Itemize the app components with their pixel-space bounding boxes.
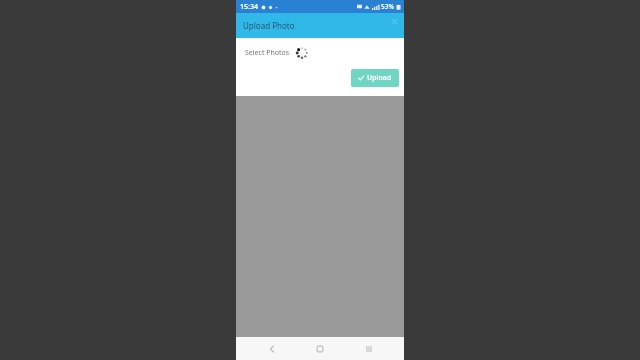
button[interactable]: Recents bbox=[356, 337, 382, 360]
staticText: Select Photos bbox=[245, 48, 290, 58]
button[interactable]: Back bbox=[259, 337, 285, 360]
button[interactable]: Upload bbox=[351, 69, 399, 87]
staticText: 53% bbox=[381, 2, 394, 11]
button[interactable]: Select Photos bbox=[245, 46, 309, 60]
button[interactable]: Close bbox=[389, 16, 399, 26]
staticText: Upload bbox=[367, 73, 392, 83]
button[interactable]: Home bbox=[307, 337, 333, 360]
staticText: 15:34 bbox=[240, 2, 258, 12]
staticText: Upload Photo bbox=[243, 20, 295, 31]
